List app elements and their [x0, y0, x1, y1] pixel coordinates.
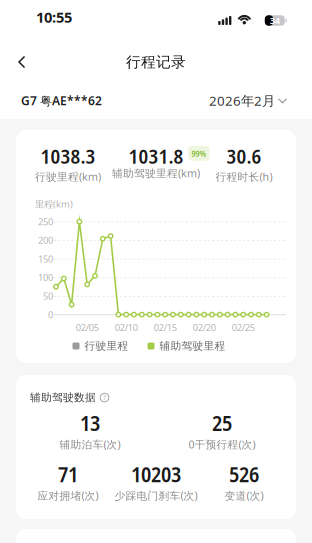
staticText: 100 — [38, 271, 53, 284]
staticText: 10:55 — [36, 7, 72, 27]
staticText: 02/15 — [154, 321, 177, 334]
staticText: 0干预行程(次) — [188, 437, 255, 451]
staticText: 25 — [212, 408, 232, 437]
staticText: 02/05 — [76, 321, 99, 334]
staticText: 2026年2月 — [209, 92, 275, 109]
staticText: 1038.3 — [40, 142, 95, 169]
staticText: 200 — [38, 234, 53, 246]
staticText: 辅助驾驶里程 — [159, 339, 225, 352]
staticText: 13 — [80, 408, 100, 437]
staticText: 少踩电门刹车(次) — [114, 488, 197, 503]
staticText: 71 — [58, 459, 78, 488]
staticText: 02/25 — [232, 321, 255, 334]
staticText: 里程(km) — [35, 198, 73, 210]
staticText: 行程时长(h) — [215, 169, 272, 184]
staticText: ? — [103, 393, 106, 402]
button[interactable]: 2026年2月 — [209, 92, 312, 109]
staticText: 02/10 — [115, 321, 138, 334]
staticText: 1031.8 — [128, 142, 183, 169]
staticText: 10203 — [131, 459, 181, 488]
staticText: 02/20 — [193, 321, 216, 334]
staticText: 34 — [270, 14, 280, 27]
staticText: 应对拥堵(次) — [37, 488, 98, 503]
staticText: 行程记录 — [126, 53, 186, 71]
button[interactable] — [15, 52, 29, 71]
staticText: 行驶里程(km) — [35, 169, 101, 184]
staticText: 辅助泊车(次) — [59, 437, 120, 451]
staticText: 30.6 — [226, 142, 261, 169]
button[interactable]: ? — [100, 393, 109, 402]
staticText: 辅助驾驶里程(km) — [112, 166, 200, 180]
staticText: 526 — [229, 459, 259, 488]
staticText: 行驶里程 — [84, 339, 128, 352]
staticText: 辅助驾驶数据 — [30, 391, 96, 404]
staticText: G7 粤AE***62 — [21, 92, 102, 108]
staticText: 变道(次) — [224, 488, 263, 503]
staticText: 99% — [191, 147, 206, 159]
staticText: 50 — [43, 290, 53, 302]
button[interactable]: G7 粤AE***62 — [0, 92, 102, 108]
staticText: 250 — [38, 215, 53, 228]
staticText: 0 — [48, 308, 53, 321]
staticText: 150 — [38, 253, 53, 265]
